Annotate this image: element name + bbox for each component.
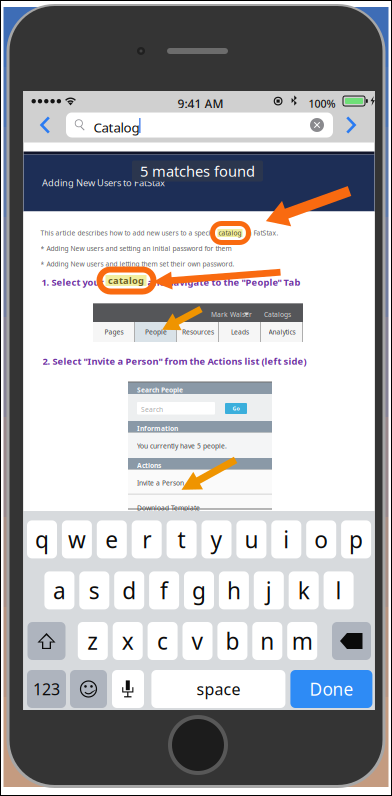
staticText: i bbox=[283, 524, 289, 554]
staticText: c bbox=[157, 626, 168, 656]
button[interactable]: z bbox=[78, 622, 108, 660]
button[interactable]: v bbox=[182, 622, 212, 660]
staticText: Analytics bbox=[268, 328, 295, 336]
staticText: Leads bbox=[231, 328, 249, 336]
staticText: Pages bbox=[104, 328, 123, 336]
button[interactable]: c bbox=[148, 622, 178, 660]
staticText: a bbox=[53, 575, 66, 605]
staticText: 100% bbox=[308, 96, 335, 111]
button[interactable]: f bbox=[149, 571, 179, 609]
staticText: u bbox=[244, 524, 258, 554]
button[interactable]: r bbox=[132, 520, 162, 558]
staticText: y bbox=[210, 524, 222, 554]
staticText: catalog bbox=[108, 274, 144, 287]
button[interactable]: y bbox=[201, 520, 231, 558]
staticText: t bbox=[178, 524, 186, 554]
staticText: v bbox=[191, 626, 203, 656]
staticText: 9:41 AM bbox=[177, 96, 223, 112]
staticText: f bbox=[160, 575, 168, 605]
button[interactable]: Delete bbox=[332, 622, 371, 660]
button[interactable]: g bbox=[184, 571, 214, 609]
button[interactable]: p bbox=[341, 520, 371, 558]
staticText: r bbox=[142, 524, 151, 554]
staticText: Done bbox=[309, 677, 353, 700]
button[interactable]: o bbox=[306, 520, 336, 558]
button[interactable]: Resources bbox=[177, 322, 219, 342]
staticText: Search People bbox=[137, 385, 183, 394]
staticText: k bbox=[298, 575, 310, 605]
staticText: Information bbox=[137, 424, 178, 433]
button[interactable]: a bbox=[44, 571, 74, 609]
button[interactable]: q bbox=[27, 520, 57, 558]
staticText: in FatStax. bbox=[245, 228, 278, 237]
button[interactable]: Emoji bbox=[70, 670, 107, 708]
staticText: Invite a Person bbox=[137, 478, 184, 487]
staticText: catalog bbox=[218, 229, 241, 237]
staticText: Download Template bbox=[137, 503, 200, 512]
staticText: j bbox=[266, 575, 272, 605]
staticText: space bbox=[196, 678, 240, 700]
staticText: Resources bbox=[182, 328, 214, 336]
button[interactable]: Leads bbox=[219, 322, 261, 342]
button[interactable]: j bbox=[254, 571, 284, 609]
button[interactable]: Dictation bbox=[112, 670, 144, 708]
button[interactable]: i bbox=[271, 520, 301, 558]
button[interactable]: Shift bbox=[27, 622, 65, 660]
staticText: Adding New Users to FatStax bbox=[42, 176, 165, 189]
staticText: p bbox=[349, 524, 363, 554]
button[interactable]: 123 bbox=[27, 670, 66, 708]
button[interactable]: d bbox=[114, 571, 144, 609]
button[interactable]: x bbox=[113, 622, 143, 660]
staticText: b bbox=[225, 626, 239, 656]
button[interactable]: l bbox=[324, 571, 354, 609]
staticText: x bbox=[122, 626, 134, 656]
staticText: This article describes how to add new us… bbox=[40, 228, 210, 237]
button[interactable]: space bbox=[151, 670, 285, 708]
staticText: n bbox=[260, 626, 274, 656]
button[interactable]: Analytics bbox=[261, 322, 303, 342]
staticText: Catalogs bbox=[264, 310, 291, 319]
staticText: g bbox=[192, 575, 206, 605]
staticText: z bbox=[87, 626, 98, 656]
button[interactable]: k bbox=[289, 571, 319, 609]
button[interactable]: Pages bbox=[93, 322, 135, 342]
staticText: and navigate to the "People" Tab bbox=[147, 276, 300, 288]
staticText: Mark Walser bbox=[211, 310, 252, 319]
button[interactable]: Forward bbox=[339, 111, 365, 139]
button[interactable]: Back bbox=[32, 111, 58, 139]
button[interactable]: Clear text bbox=[310, 118, 324, 132]
button[interactable]: t bbox=[167, 520, 197, 558]
staticText: e bbox=[105, 524, 118, 554]
staticText: You currently have 5 people. bbox=[137, 441, 227, 450]
staticText: d bbox=[122, 575, 136, 605]
button[interactable]: u bbox=[236, 520, 266, 558]
staticText: 123 bbox=[33, 678, 60, 700]
staticText: o bbox=[314, 524, 328, 554]
staticText: * Adding New users and setting an initia… bbox=[40, 244, 231, 253]
button[interactable]: People bbox=[135, 322, 177, 342]
staticText: 5 matches found bbox=[140, 161, 255, 181]
staticText: Actions bbox=[137, 461, 161, 470]
staticText: Search bbox=[141, 405, 163, 414]
button[interactable]: n bbox=[252, 622, 282, 660]
staticText: 2. Select "Invite a Person" from the Act… bbox=[42, 355, 306, 367]
staticText: l bbox=[336, 575, 342, 605]
staticText: People bbox=[145, 328, 167, 336]
button[interactable]: Done bbox=[290, 670, 372, 708]
staticText: w bbox=[68, 524, 86, 554]
staticText: Catalog bbox=[93, 118, 139, 136]
staticText: q bbox=[35, 524, 49, 554]
staticText: 1. Select your bbox=[41, 276, 103, 288]
staticText: * Adding New users and letting them set … bbox=[40, 259, 234, 268]
button[interactable]: w bbox=[62, 520, 92, 558]
staticText: Go bbox=[232, 405, 239, 412]
staticText: m bbox=[292, 626, 313, 656]
button[interactable]: e bbox=[97, 520, 127, 558]
button[interactable]: b bbox=[217, 622, 247, 660]
button[interactable]: h bbox=[219, 571, 249, 609]
button[interactable]: s bbox=[79, 571, 109, 609]
button[interactable]: m bbox=[287, 622, 317, 660]
staticText: s bbox=[89, 575, 100, 605]
staticText: h bbox=[227, 575, 241, 605]
